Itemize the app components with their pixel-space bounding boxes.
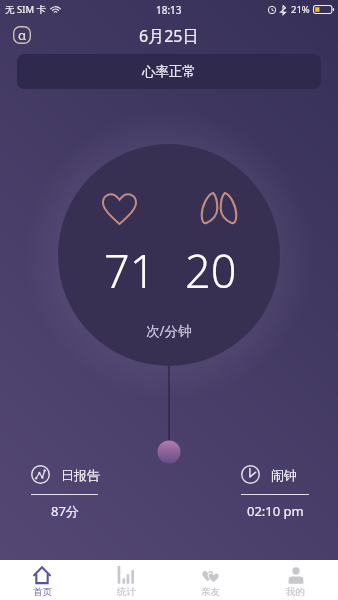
button[interactable]: 首页 bbox=[0, 560, 84, 600]
staticText: 02:10 pm bbox=[247, 502, 304, 520]
staticText: 统计 bbox=[117, 586, 136, 598]
button[interactable]: 我的 bbox=[253, 560, 338, 600]
staticText: 闹钟 bbox=[271, 467, 297, 483]
button[interactable]: 统计 bbox=[84, 560, 168, 600]
staticText: 20 bbox=[185, 240, 237, 301]
staticText: 21% bbox=[291, 3, 310, 16]
staticText: 71 bbox=[104, 240, 156, 301]
staticText: 18:13 bbox=[156, 3, 182, 17]
staticText: 心率正常 bbox=[142, 63, 196, 80]
button[interactable]: 闹钟 bbox=[241, 465, 309, 520]
staticText: 次/分钟 bbox=[146, 322, 192, 340]
staticText: 无 SIM 卡 bbox=[5, 3, 46, 16]
button[interactable]: Account bbox=[13, 26, 31, 44]
staticText: 87分 bbox=[51, 502, 79, 520]
staticText: 日报告 bbox=[61, 467, 100, 483]
staticText: 首页 bbox=[33, 586, 52, 598]
button[interactable]: 心率正常 bbox=[17, 54, 321, 89]
staticText: 亲友 bbox=[201, 586, 220, 598]
staticText: α bbox=[18, 26, 27, 44]
button[interactable]: 日报告 bbox=[31, 465, 98, 520]
staticText: 6月25日 bbox=[139, 25, 199, 47]
button[interactable]: 亲友 bbox=[168, 560, 253, 600]
staticText: 我的 bbox=[286, 586, 305, 598]
